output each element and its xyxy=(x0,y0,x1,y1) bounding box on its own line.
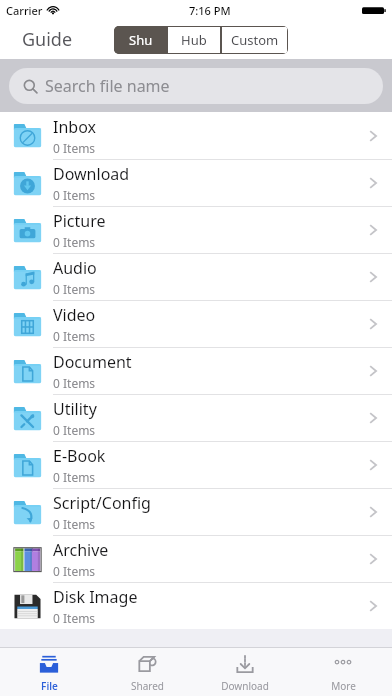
staticText: 0 Items xyxy=(53,610,96,626)
staticText: 0 Items xyxy=(53,234,96,250)
button[interactable]: Disk Image xyxy=(0,582,392,629)
button[interactable]: Download xyxy=(0,159,392,206)
staticText: Hub xyxy=(181,31,207,49)
staticText: 0 Items xyxy=(53,187,96,203)
button[interactable]: Hub xyxy=(168,27,220,53)
button[interactable]: Utility xyxy=(0,394,392,441)
staticText: Document xyxy=(53,351,132,373)
staticText: 0 Items xyxy=(53,140,96,156)
staticText: Shu xyxy=(129,31,153,49)
staticText: Audio xyxy=(53,257,97,279)
staticText: Picture xyxy=(53,210,106,232)
button[interactable]: File xyxy=(0,648,98,696)
button[interactable]: Document xyxy=(0,347,392,394)
button[interactable]: Shared xyxy=(98,648,196,696)
button[interactable]: Picture xyxy=(0,206,392,253)
staticText: 7:16 PM xyxy=(189,3,231,18)
staticText: 0 Items xyxy=(53,281,96,297)
button[interactable]: Video xyxy=(0,300,392,347)
staticText: Search file name xyxy=(45,75,170,97)
staticText: Shared xyxy=(131,679,164,693)
staticText: File xyxy=(41,679,58,693)
staticText: Guide xyxy=(22,27,73,52)
staticText: E-Book xyxy=(53,445,106,467)
staticText: Utility xyxy=(53,398,97,420)
staticText: 0 Items xyxy=(53,516,96,532)
staticText: Custom xyxy=(231,31,279,49)
staticText: Download xyxy=(221,679,269,693)
staticText: 0 Items xyxy=(53,328,96,344)
staticText: 0 Items xyxy=(53,469,96,485)
staticText: Inbox xyxy=(53,116,96,138)
button[interactable]: Custom xyxy=(222,27,287,53)
button[interactable]: Script/Config xyxy=(0,488,392,535)
button[interactable]: Archive xyxy=(0,535,392,582)
staticText: 0 Items xyxy=(53,375,96,391)
staticText: 0 Items xyxy=(53,422,96,438)
staticText: Disk Image xyxy=(53,586,138,608)
button[interactable]: Download xyxy=(196,648,294,696)
button[interactable]: Audio xyxy=(0,253,392,300)
staticText: Video xyxy=(53,304,96,326)
staticText: More xyxy=(331,679,356,693)
button[interactable]: E-Book xyxy=(0,441,392,488)
button[interactable]: Search file name xyxy=(9,68,383,104)
staticText: Archive xyxy=(53,539,109,561)
staticText: 0 Items xyxy=(53,563,96,579)
button[interactable]: More xyxy=(294,648,392,696)
staticText: Download xyxy=(53,163,130,185)
staticText: Script/Config xyxy=(53,492,151,514)
button[interactable]: Inbox xyxy=(0,112,392,159)
button[interactable]: Shu xyxy=(114,26,167,54)
staticText: Carrier xyxy=(6,3,43,18)
